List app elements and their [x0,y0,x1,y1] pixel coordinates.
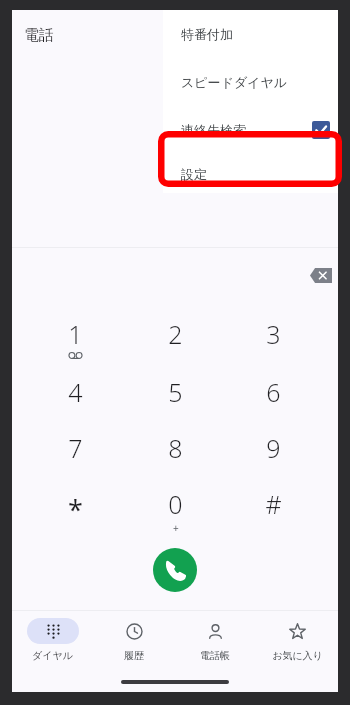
button[interactable]: 7 [49,431,101,479]
button[interactable]: スピードダイヤル [163,58,338,106]
button[interactable]: 8 [149,431,201,479]
staticText: 電話 [24,26,54,45]
button[interactable]: 0 [149,487,201,535]
staticText: 9 [266,431,281,465]
staticText: 4 [68,375,83,409]
staticText: 連絡先検索 [181,122,246,138]
button[interactable]: 5 [149,375,201,423]
button[interactable]: お気に入り [256,614,338,666]
button[interactable]: 9 [247,431,299,479]
button[interactable]: Backspace [304,260,338,290]
staticText: 0 [168,487,183,521]
button[interactable]: 4 [49,375,101,423]
button[interactable]: 6 [247,375,299,423]
staticText: 履歴 [124,649,144,662]
staticText: # [265,487,282,521]
staticText: 5 [168,375,183,409]
staticText: * [68,491,83,528]
button[interactable]: 連絡先検索 [163,106,338,154]
staticText: 3 [266,317,281,351]
staticText: 8 [168,431,183,465]
button[interactable]: # [247,487,299,535]
button[interactable]: Call [153,548,197,592]
button[interactable]: ダイヤル [12,614,93,666]
staticText: + [173,521,179,535]
button[interactable]: * [49,487,101,535]
staticText: ダイヤル [32,649,73,662]
staticText: スピードダイヤル [181,74,288,90]
button[interactable]: 2 [149,317,201,365]
staticText: 7 [68,431,83,465]
button[interactable]: 1 [49,317,101,365]
staticText: 2 [168,317,183,351]
staticText: お気に入り [272,649,323,662]
staticText: 設定 [181,166,207,182]
button[interactable]: 特番付加 [163,10,338,58]
staticText: 1 [68,317,83,351]
button[interactable]: 電話帳 [174,614,256,666]
staticText: 電話帳 [200,649,230,662]
button[interactable]: 履歴 [93,614,174,666]
staticText: 6 [266,375,281,409]
button[interactable]: 電話 [22,22,56,49]
button[interactable]: 3 [247,317,299,365]
button[interactable]: 設定 [163,154,338,193]
staticText: 特番付加 [181,26,233,42]
